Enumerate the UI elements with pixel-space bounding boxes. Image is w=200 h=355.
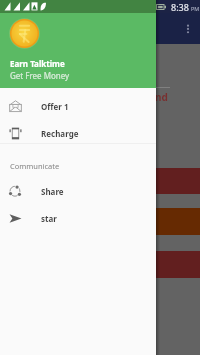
button[interactable]: Recharge [0,120,156,147]
staticText: nd [155,90,168,104]
staticText: Earn Talktime [10,58,65,69]
button[interactable]: Offer 1 [0,93,156,120]
staticText: Get Free Money [10,70,70,81]
staticText: Offer 1 [41,101,69,112]
staticText: PM [191,5,200,12]
staticText: star [41,213,57,224]
button[interactable]: star [0,205,156,232]
staticText: Recharge [41,128,79,139]
staticText: Communicate [10,161,60,171]
staticText: 8:38 [171,1,189,13]
button[interactable]: More options [178,19,198,39]
button[interactable]: Share [0,178,156,205]
staticText: Share [41,186,64,197]
